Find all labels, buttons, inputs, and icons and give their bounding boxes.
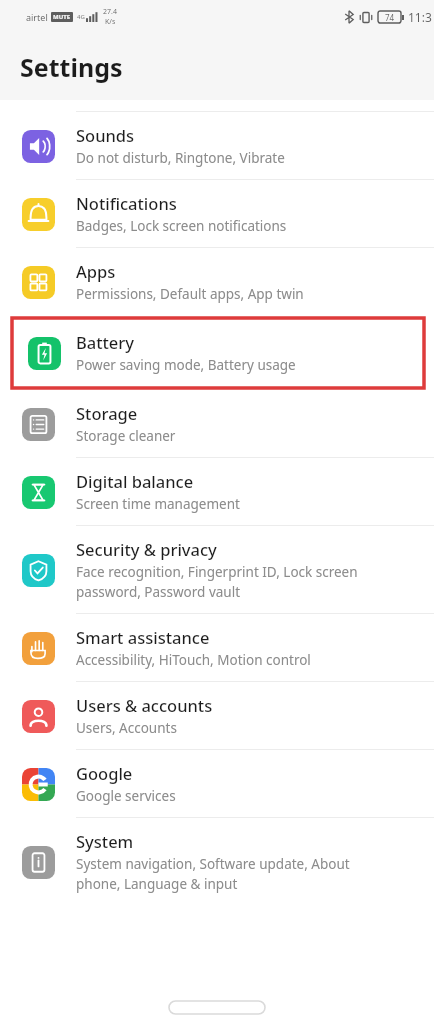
staticText: Users, Accounts <box>76 719 177 737</box>
staticText: Badges, Lock screen notifications <box>76 217 287 235</box>
button[interactable]: Sounds <box>0 112 434 180</box>
staticText: 74 <box>385 12 395 23</box>
staticText: K/s <box>105 17 116 27</box>
staticText: Do not disturb, Ringtone, Vibrate <box>76 149 285 167</box>
staticText: Digital balance <box>76 470 194 492</box>
staticText: Users & accounts <box>76 694 213 716</box>
staticText: Google services <box>76 787 176 805</box>
button[interactable]: System <box>0 818 434 906</box>
staticText: Face recognition, Fingerprint ID, Lock s… <box>76 563 358 601</box>
button[interactable]: Google <box>0 750 434 818</box>
staticText: Storage <box>76 402 138 424</box>
button[interactable]: Storage <box>0 390 434 458</box>
staticText: Settings <box>20 50 123 84</box>
staticText: Permissions, Default apps, App twin <box>76 285 304 303</box>
staticText: Storage cleaner <box>76 427 176 445</box>
button[interactable]: Notifications <box>0 180 434 248</box>
staticText: System <box>76 830 134 852</box>
staticText: Sounds <box>76 124 135 146</box>
staticText: Accessibility, HiTouch, Motion control <box>76 651 311 669</box>
button[interactable]: Users & accounts <box>0 682 434 750</box>
staticText: Apps <box>76 260 116 282</box>
button[interactable]: Apps <box>0 248 434 316</box>
button[interactable]: Digital balance <box>0 458 434 526</box>
staticText: Google <box>76 762 133 784</box>
staticText: 4G <box>77 13 85 21</box>
staticText: Security & privacy <box>76 538 217 560</box>
staticText: System navigation, Software update, Abou… <box>76 855 350 893</box>
staticText: 27.4 <box>103 7 117 17</box>
staticText: airtel <box>26 11 48 23</box>
staticText: Battery <box>76 331 135 353</box>
staticText: 11:3 <box>408 9 432 25</box>
staticText: Power saving mode, Battery usage <box>76 356 296 374</box>
staticText: MUTE <box>53 13 71 21</box>
staticText: Smart assistance <box>76 626 210 648</box>
button[interactable]: Battery <box>12 318 424 388</box>
staticText: Notifications <box>76 192 177 214</box>
button[interactable]: Security & privacy <box>0 526 434 614</box>
staticText: Screen time management <box>76 495 240 513</box>
button[interactable]: Smart assistance <box>0 614 434 682</box>
